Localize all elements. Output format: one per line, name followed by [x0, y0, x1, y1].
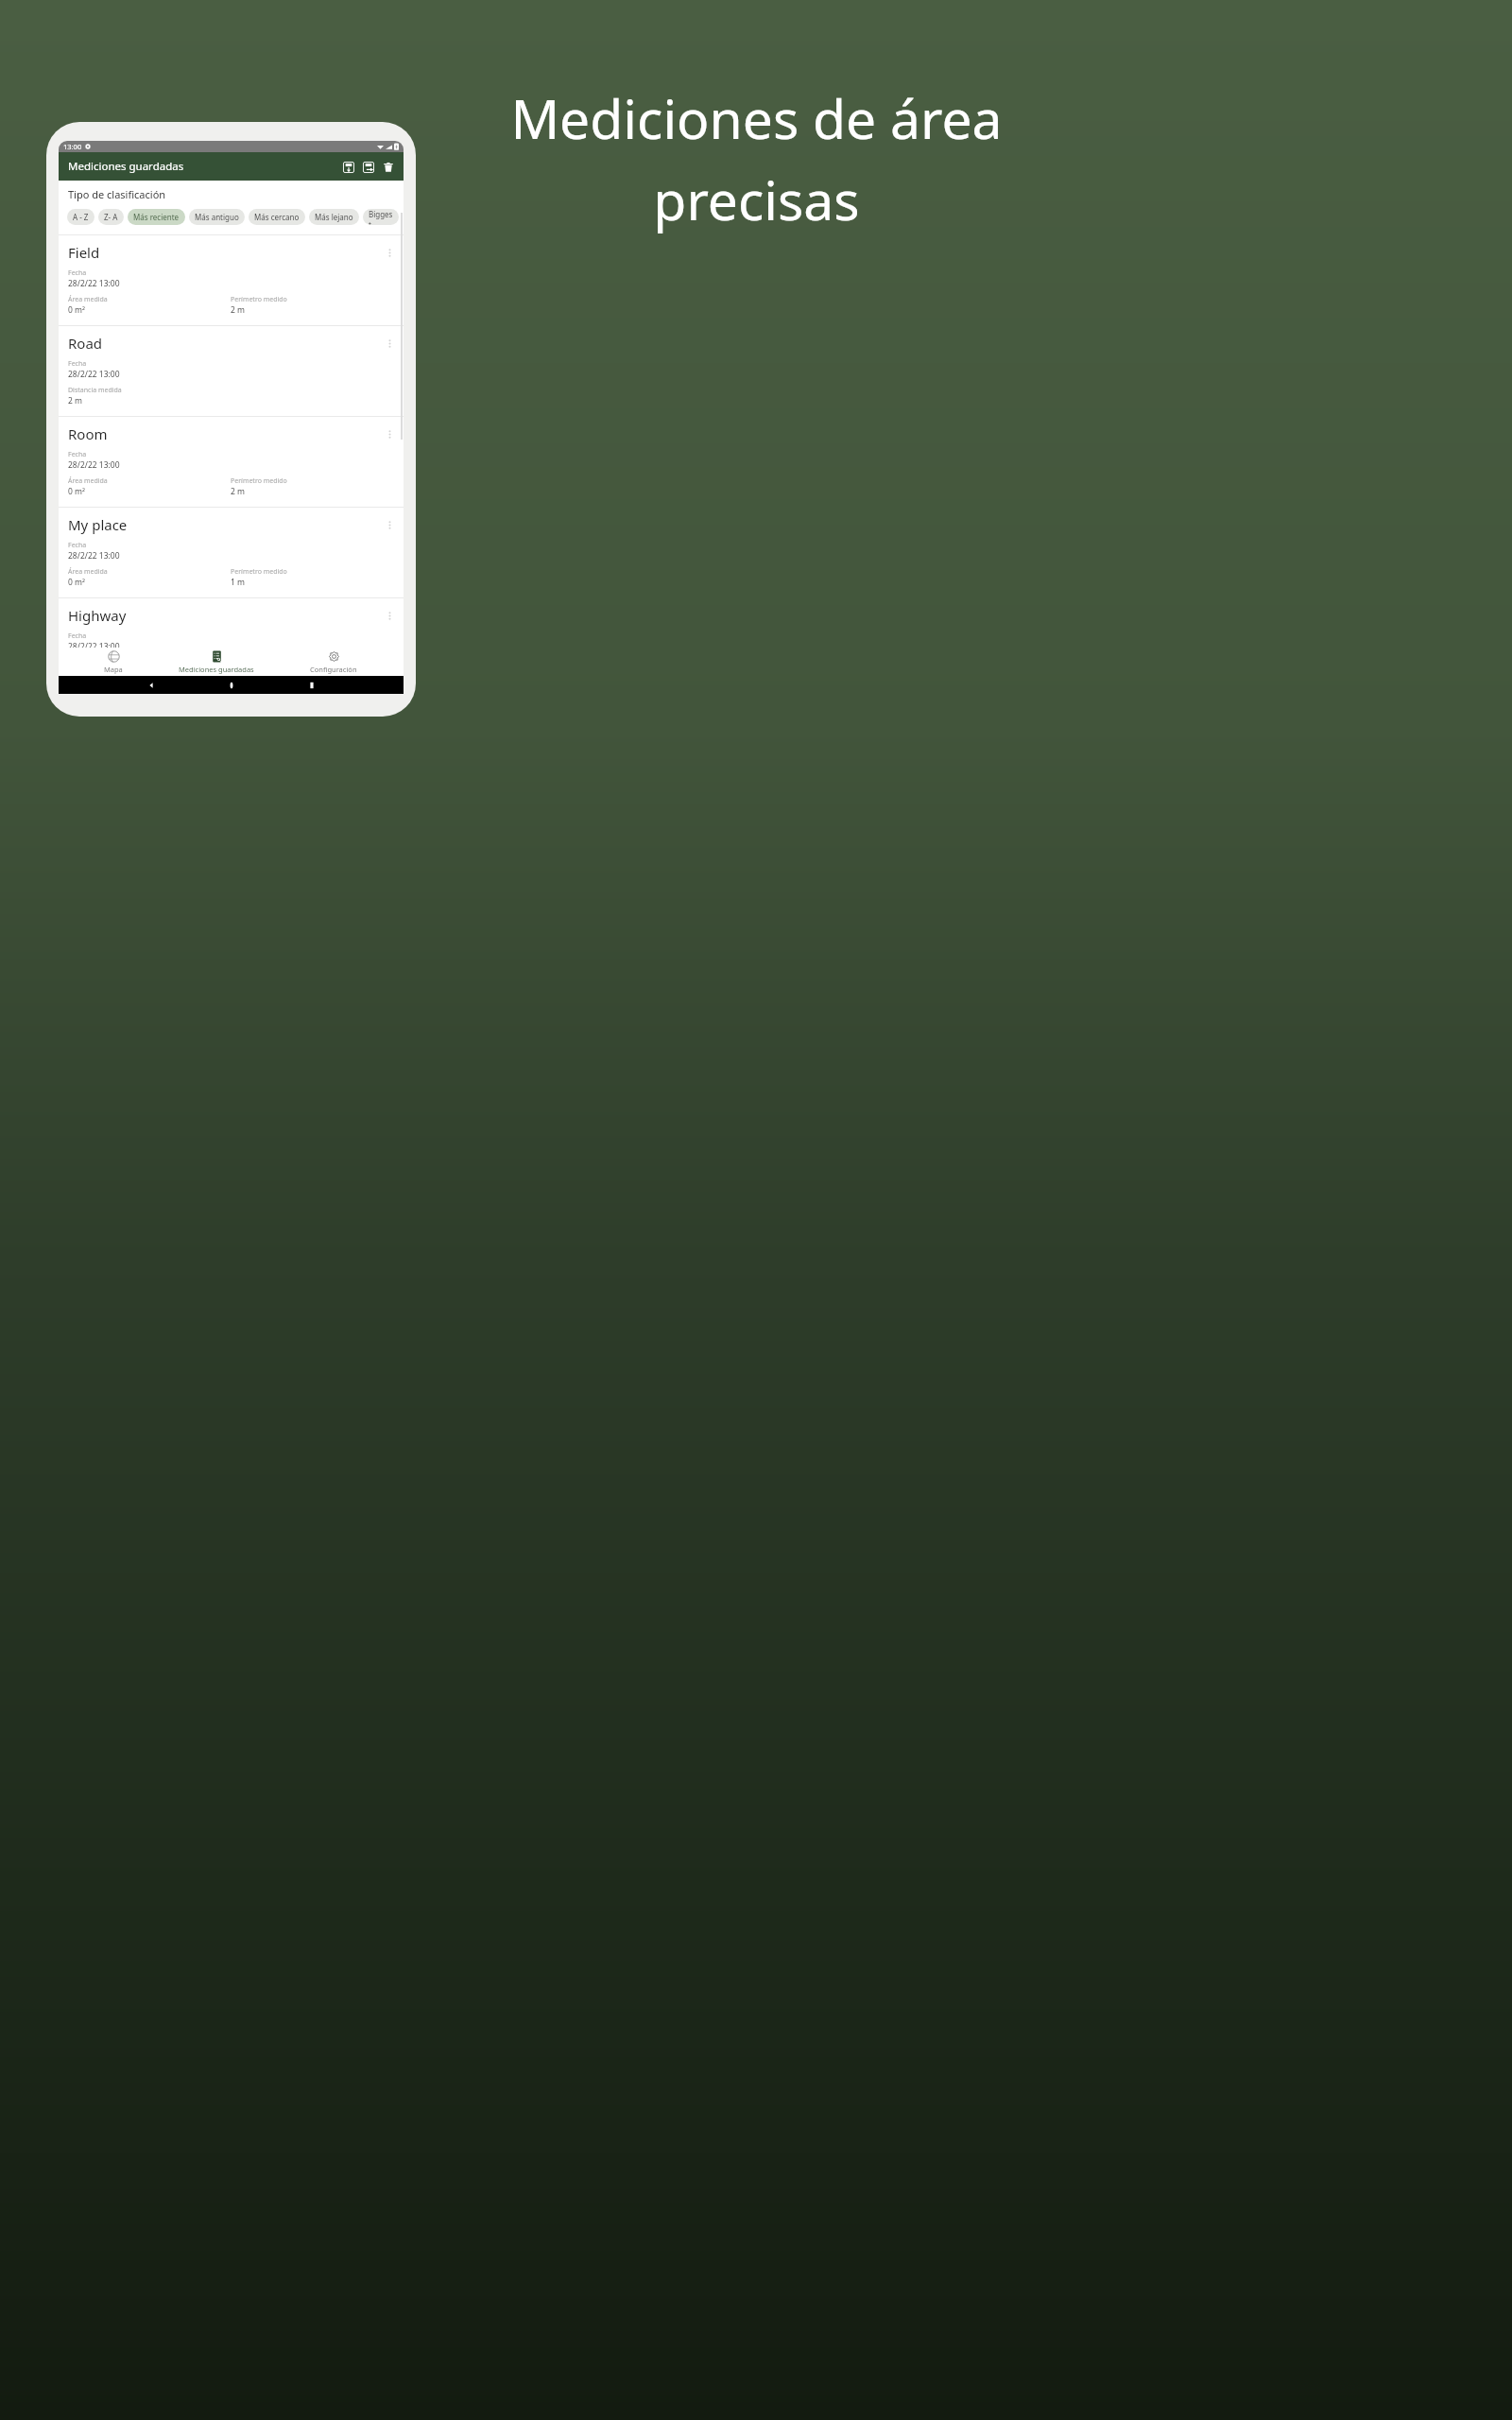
staticText: Más cercano [254, 212, 300, 222]
staticText: 28/2/22 13:00 [68, 641, 120, 648]
staticText: Área medida [68, 295, 108, 304]
staticText: Más antiguo [195, 212, 239, 222]
staticText: 0 m² [68, 577, 85, 588]
staticText: 28/2/22 13:00 [68, 550, 120, 562]
staticText: Fecha [68, 541, 87, 550]
staticText: 28/2/22 13:00 [68, 459, 120, 471]
staticText: Mediciones guardadas [68, 159, 184, 174]
button[interactable]: Mediciones guardadas [177, 650, 256, 674]
staticText: 2 m [231, 486, 246, 497]
button[interactable]: Mapa [102, 650, 125, 674]
button[interactable]: A - Z [67, 209, 94, 225]
button[interactable]: Más antiguo [189, 209, 245, 225]
staticText: Field [68, 243, 100, 262]
staticText: Fecha [68, 631, 87, 641]
staticText: Perímetro medido [231, 567, 287, 577]
staticText: 0 m² [68, 486, 85, 497]
staticText: Highway [68, 606, 127, 625]
button[interactable]: Más opciones [383, 337, 397, 351]
button[interactable]: Más reciente [128, 209, 185, 225]
staticText: 28/2/22 13:00 [68, 278, 120, 289]
staticText: Fecha [68, 450, 87, 459]
staticText: Room [68, 424, 108, 443]
staticText: 2 m [231, 304, 246, 316]
staticText: 1 m [231, 577, 246, 588]
staticText: 13:00 [63, 142, 82, 151]
button[interactable]: Más opciones [383, 518, 397, 532]
staticText: Road [68, 334, 103, 353]
staticText: Biggest [369, 209, 393, 225]
staticText: Área medida [68, 476, 108, 486]
button[interactable]: Más opciones [383, 246, 397, 260]
staticText: Fecha [68, 268, 87, 278]
button[interactable]: Eliminar [378, 157, 398, 177]
button[interactable]: Biggest [363, 209, 399, 225]
button[interactable]: Inicio [224, 678, 238, 692]
staticText: Fecha [68, 359, 87, 369]
button[interactable]: Room [59, 416, 404, 507]
staticText: Mapa [104, 665, 123, 674]
button[interactable]: Importar GPX [338, 157, 358, 177]
button[interactable]: Más opciones [383, 609, 397, 623]
staticText: Mediciones de área [510, 81, 1003, 155]
staticText: Perímetro medido [231, 295, 287, 304]
staticText: Z- A [104, 212, 118, 222]
staticText: Más reciente [133, 212, 180, 222]
button[interactable]: Atrás [144, 678, 158, 692]
button[interactable]: Field [59, 234, 404, 325]
button[interactable]: Z- A [98, 209, 124, 225]
staticText: Mediciones guardadas [179, 665, 254, 674]
staticText: My place [68, 515, 128, 534]
button[interactable]: Road [59, 325, 404, 416]
staticText: Distancia medida [68, 386, 122, 395]
button[interactable]: Highway [59, 597, 404, 648]
staticText: A - Z [73, 212, 89, 222]
button[interactable]: Recientes [304, 678, 318, 692]
staticText: precisas [653, 163, 860, 236]
staticText: Más lejano [315, 212, 353, 222]
staticText: 0 m² [68, 304, 85, 316]
button[interactable]: Más lejano [309, 209, 359, 225]
staticText: 28/2/22 13:00 [68, 369, 120, 380]
staticText: Tipo de clasificación [68, 187, 166, 201]
button[interactable]: Configuración [308, 650, 359, 674]
button[interactable]: Exportar GPX [358, 157, 378, 177]
staticText: Perímetro medido [231, 476, 287, 486]
staticText: 2 m [68, 395, 83, 406]
button[interactable]: Más opciones [383, 427, 397, 441]
staticText: Configuración [310, 665, 357, 674]
button[interactable]: Más cercano [249, 209, 305, 225]
button[interactable]: My place [59, 507, 404, 597]
staticText: Área medida [68, 567, 108, 577]
